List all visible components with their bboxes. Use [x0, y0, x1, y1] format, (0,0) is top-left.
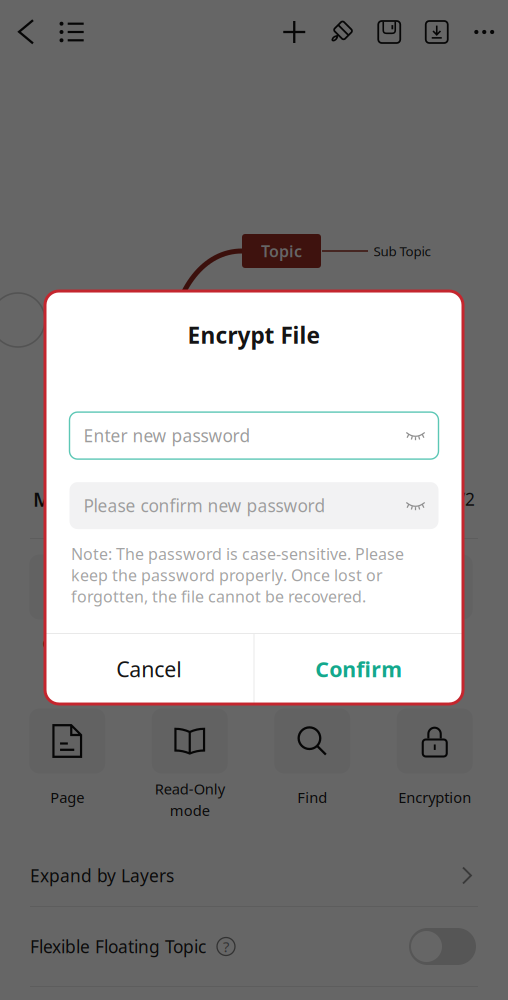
staticText: Outline	[42, 633, 92, 653]
staticText: ?	[223, 937, 229, 956]
button[interactable]: Encryption	[373, 709, 496, 821]
button[interactable]: Read-Only	[128, 709, 251, 821]
button[interactable]: Export	[413, 8, 460, 56]
staticText: Encryption	[398, 787, 471, 807]
staticText: Page	[50, 787, 84, 807]
button[interactable]: Theme	[318, 8, 365, 56]
button[interactable]: Page	[6, 709, 128, 821]
button[interactable]: Outline	[49, 8, 95, 56]
staticText: mode	[170, 800, 210, 820]
staticText: forgotten, the file cannot be recovered.	[71, 586, 366, 607]
button[interactable]: Save	[365, 8, 413, 56]
staticText: Cancel	[116, 655, 182, 683]
button[interactable]: Confirm	[254, 634, 463, 704]
button[interactable]: Back	[3, 8, 49, 56]
button[interactable]: Outline	[6, 555, 128, 667]
staticText: Expand by Layers	[30, 864, 174, 887]
staticText: Find	[297, 787, 327, 807]
button[interactable]: Find	[251, 709, 373, 821]
staticText: Sub Topic	[373, 242, 430, 260]
button[interactable]: More options	[460, 8, 508, 56]
button[interactable]: Structure	[251, 555, 373, 667]
staticText: Note: The password is case-sensitive. Pl…	[71, 543, 404, 564]
staticText: Flexible Floating Topic	[30, 935, 206, 958]
staticText: Enter new password	[83, 424, 250, 447]
button[interactable]: Share	[373, 555, 496, 667]
button[interactable]: Theme	[128, 555, 251, 667]
staticText: Read-Only	[155, 779, 225, 798]
staticText: Encrypt File	[187, 320, 320, 350]
staticText: Confirm	[315, 655, 402, 683]
staticText: Mind Map	[33, 486, 133, 512]
button[interactable]: Expand by Layers	[0, 845, 508, 906]
staticText: keep the password properly. Once lost or	[71, 564, 383, 585]
button[interactable]: Flexible Floating Topic	[409, 928, 476, 965]
button[interactable]: Cancel	[45, 634, 253, 704]
staticText: 1/2	[449, 487, 475, 510]
staticText: Please confirm new password	[83, 494, 325, 517]
staticText: Topic	[261, 240, 302, 262]
button[interactable]: Add topic	[270, 8, 318, 56]
